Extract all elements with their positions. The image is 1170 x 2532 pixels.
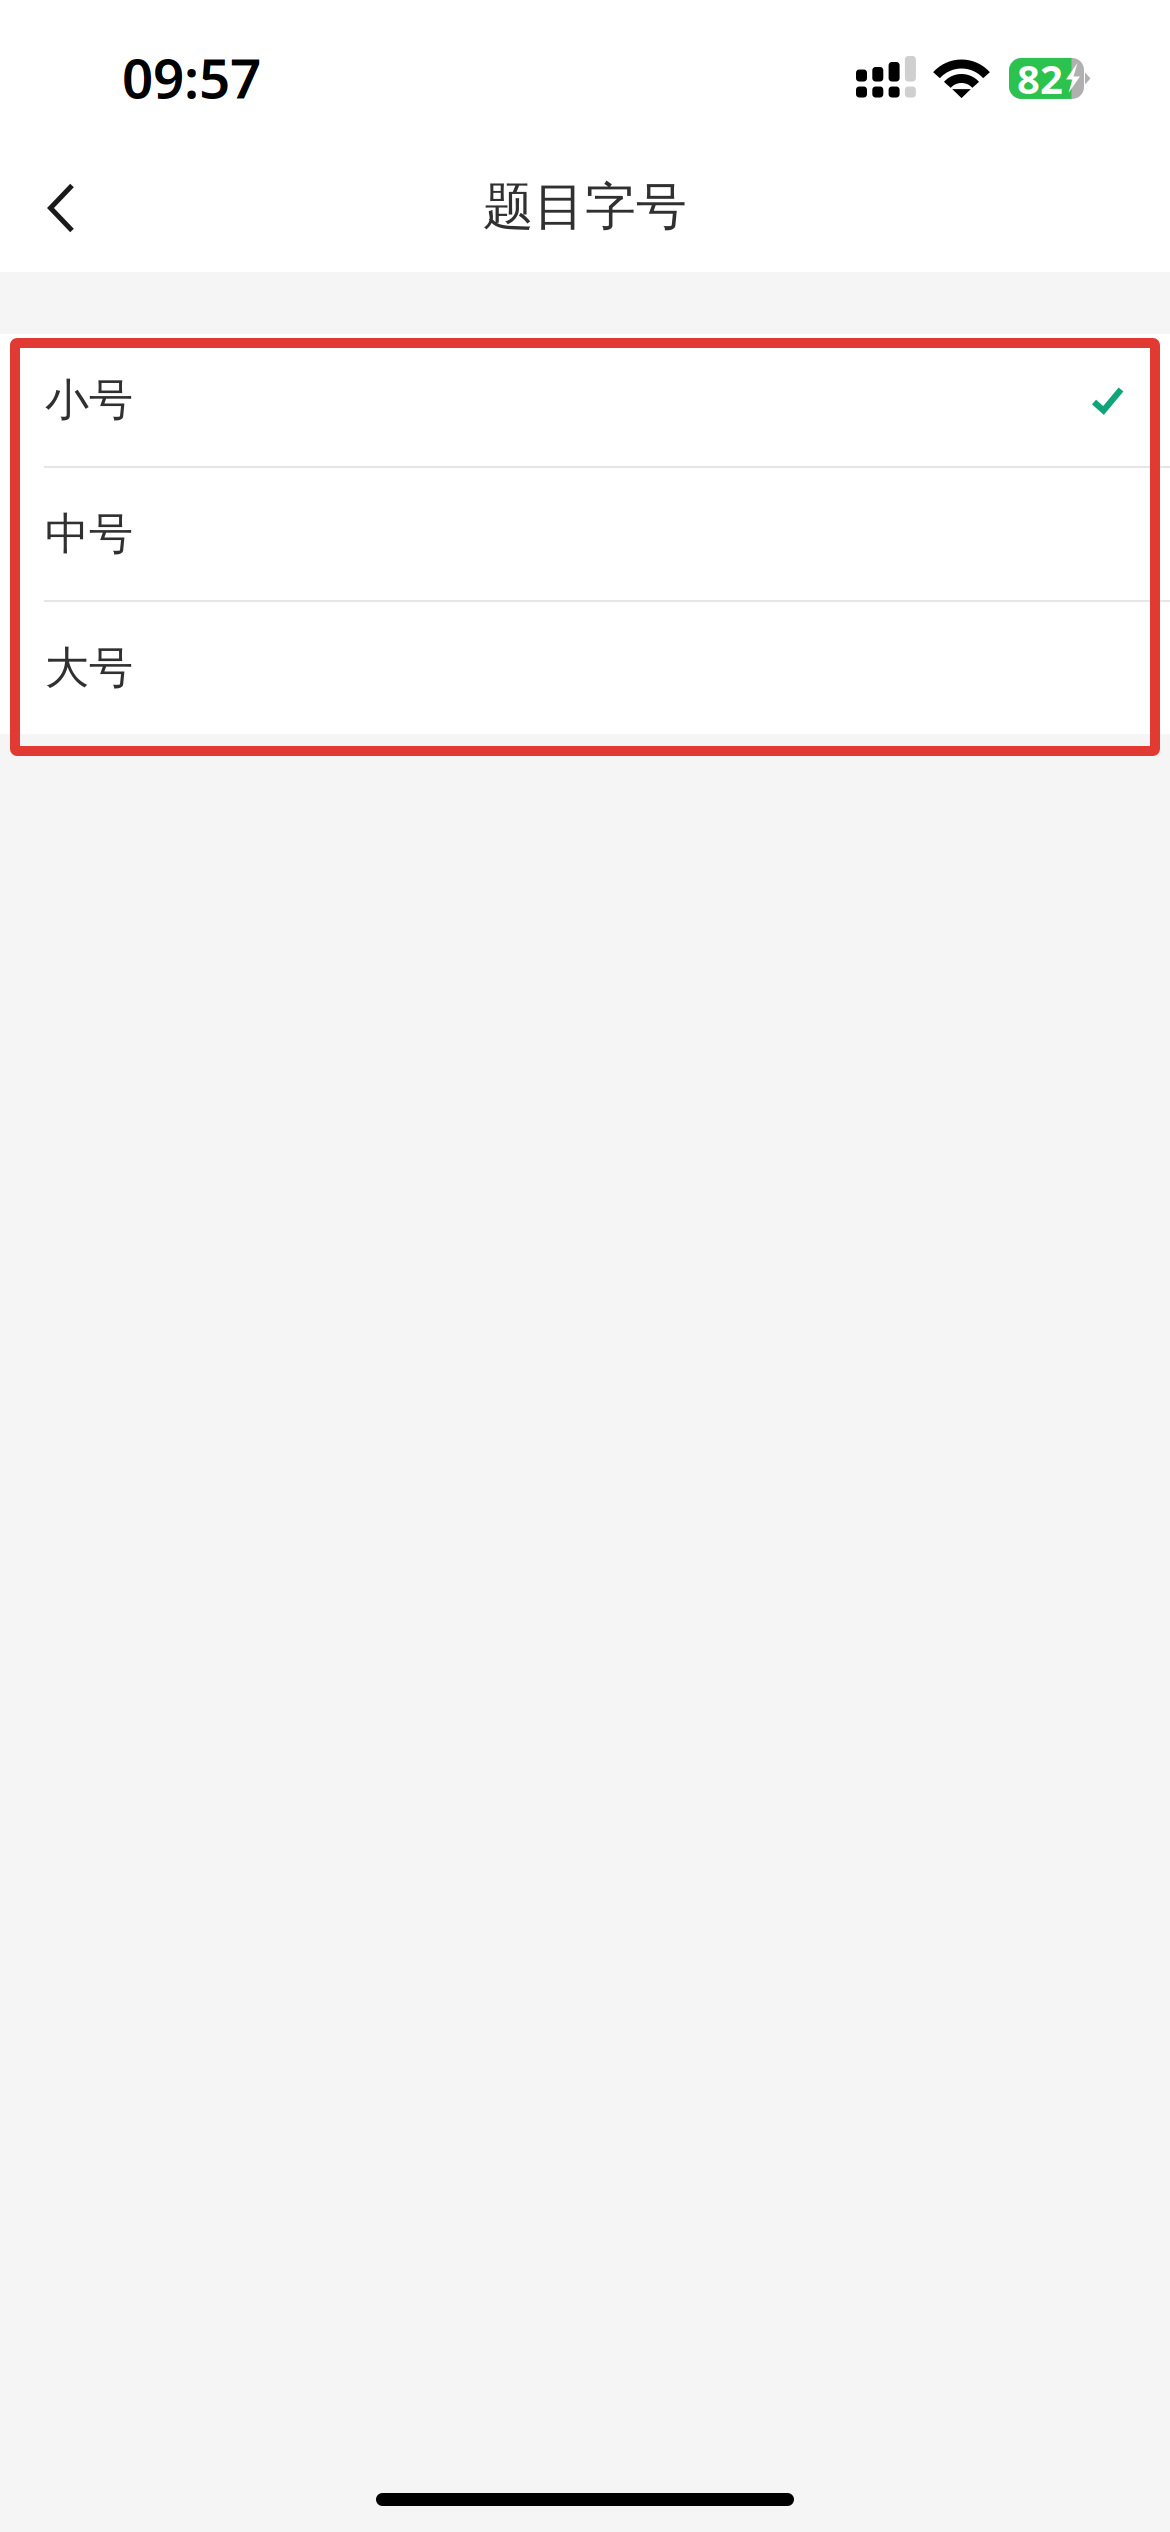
staticText: 09:57 — [122, 41, 261, 114]
button[interactable]: 小号 — [0, 334, 1170, 466]
staticText: 大号 — [45, 641, 133, 695]
button[interactable]: 大号 — [0, 602, 1170, 734]
staticText: 中号 — [45, 507, 133, 561]
staticText: 小号 — [45, 373, 133, 427]
staticText: 82 — [1017, 52, 1063, 105]
button[interactable]: 中号 — [0, 468, 1170, 600]
staticText: 题目字号 — [483, 176, 687, 238]
button[interactable]: Back — [0, 152, 104, 262]
